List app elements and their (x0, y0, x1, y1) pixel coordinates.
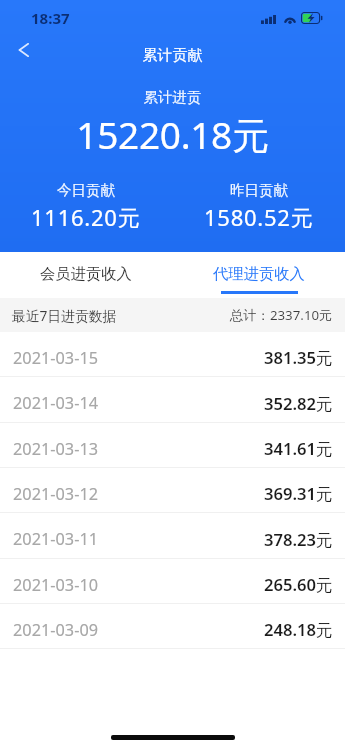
button[interactable]: 2021-03-09 (0, 604, 345, 649)
staticText: 265.60元 (264, 573, 333, 596)
staticText: 1580.52元 (204, 202, 314, 232)
staticText: 会员进贡收入 (40, 264, 132, 283)
button[interactable]: 2021-03-10 (0, 559, 345, 604)
button[interactable]: 2021-03-15 (0, 332, 345, 377)
staticText: 341.61元 (264, 437, 333, 460)
staticText: 2021-03-13 (13, 438, 99, 460)
staticText: 2021-03-10 (13, 574, 99, 596)
staticText: 总计：2337.10元 (230, 306, 333, 324)
staticText: 2021-03-14 (13, 392, 99, 414)
staticText: 代理进贡收入 (213, 264, 305, 283)
staticText: 1116.20元 (31, 202, 141, 232)
button[interactable]: 2021-03-14 (0, 377, 345, 423)
staticText: 累计贡献 (0, 46, 345, 65)
staticText: 369.31元 (264, 482, 333, 505)
staticText: 最近7日进贡数据 (12, 306, 117, 325)
staticText: 2021-03-09 (13, 619, 99, 641)
button[interactable]: Back (9, 35, 39, 65)
button[interactable]: 代理进贡收入 (172, 252, 345, 298)
button[interactable]: 会员进贡收入 (0, 252, 172, 298)
staticText: 累计进贡 (0, 88, 345, 106)
staticText: 248.18元 (264, 618, 333, 641)
staticText: 378.23元 (264, 528, 333, 551)
button[interactable]: 2021-03-11 (0, 513, 345, 559)
button[interactable]: 2021-03-13 (0, 423, 345, 468)
staticText: 18:37 (31, 8, 70, 28)
staticText: 352.82元 (264, 392, 333, 415)
staticText: 381.35元 (264, 346, 333, 369)
staticText: 2021-03-12 (13, 483, 99, 505)
staticText: 2021-03-11 (13, 528, 99, 550)
staticText: 今日贡献 (57, 181, 115, 199)
staticText: 昨日贡献 (230, 181, 288, 199)
staticText: 15220.18元 (0, 109, 345, 160)
staticText: 2021-03-15 (13, 347, 99, 369)
button[interactable]: 2021-03-12 (0, 468, 345, 513)
